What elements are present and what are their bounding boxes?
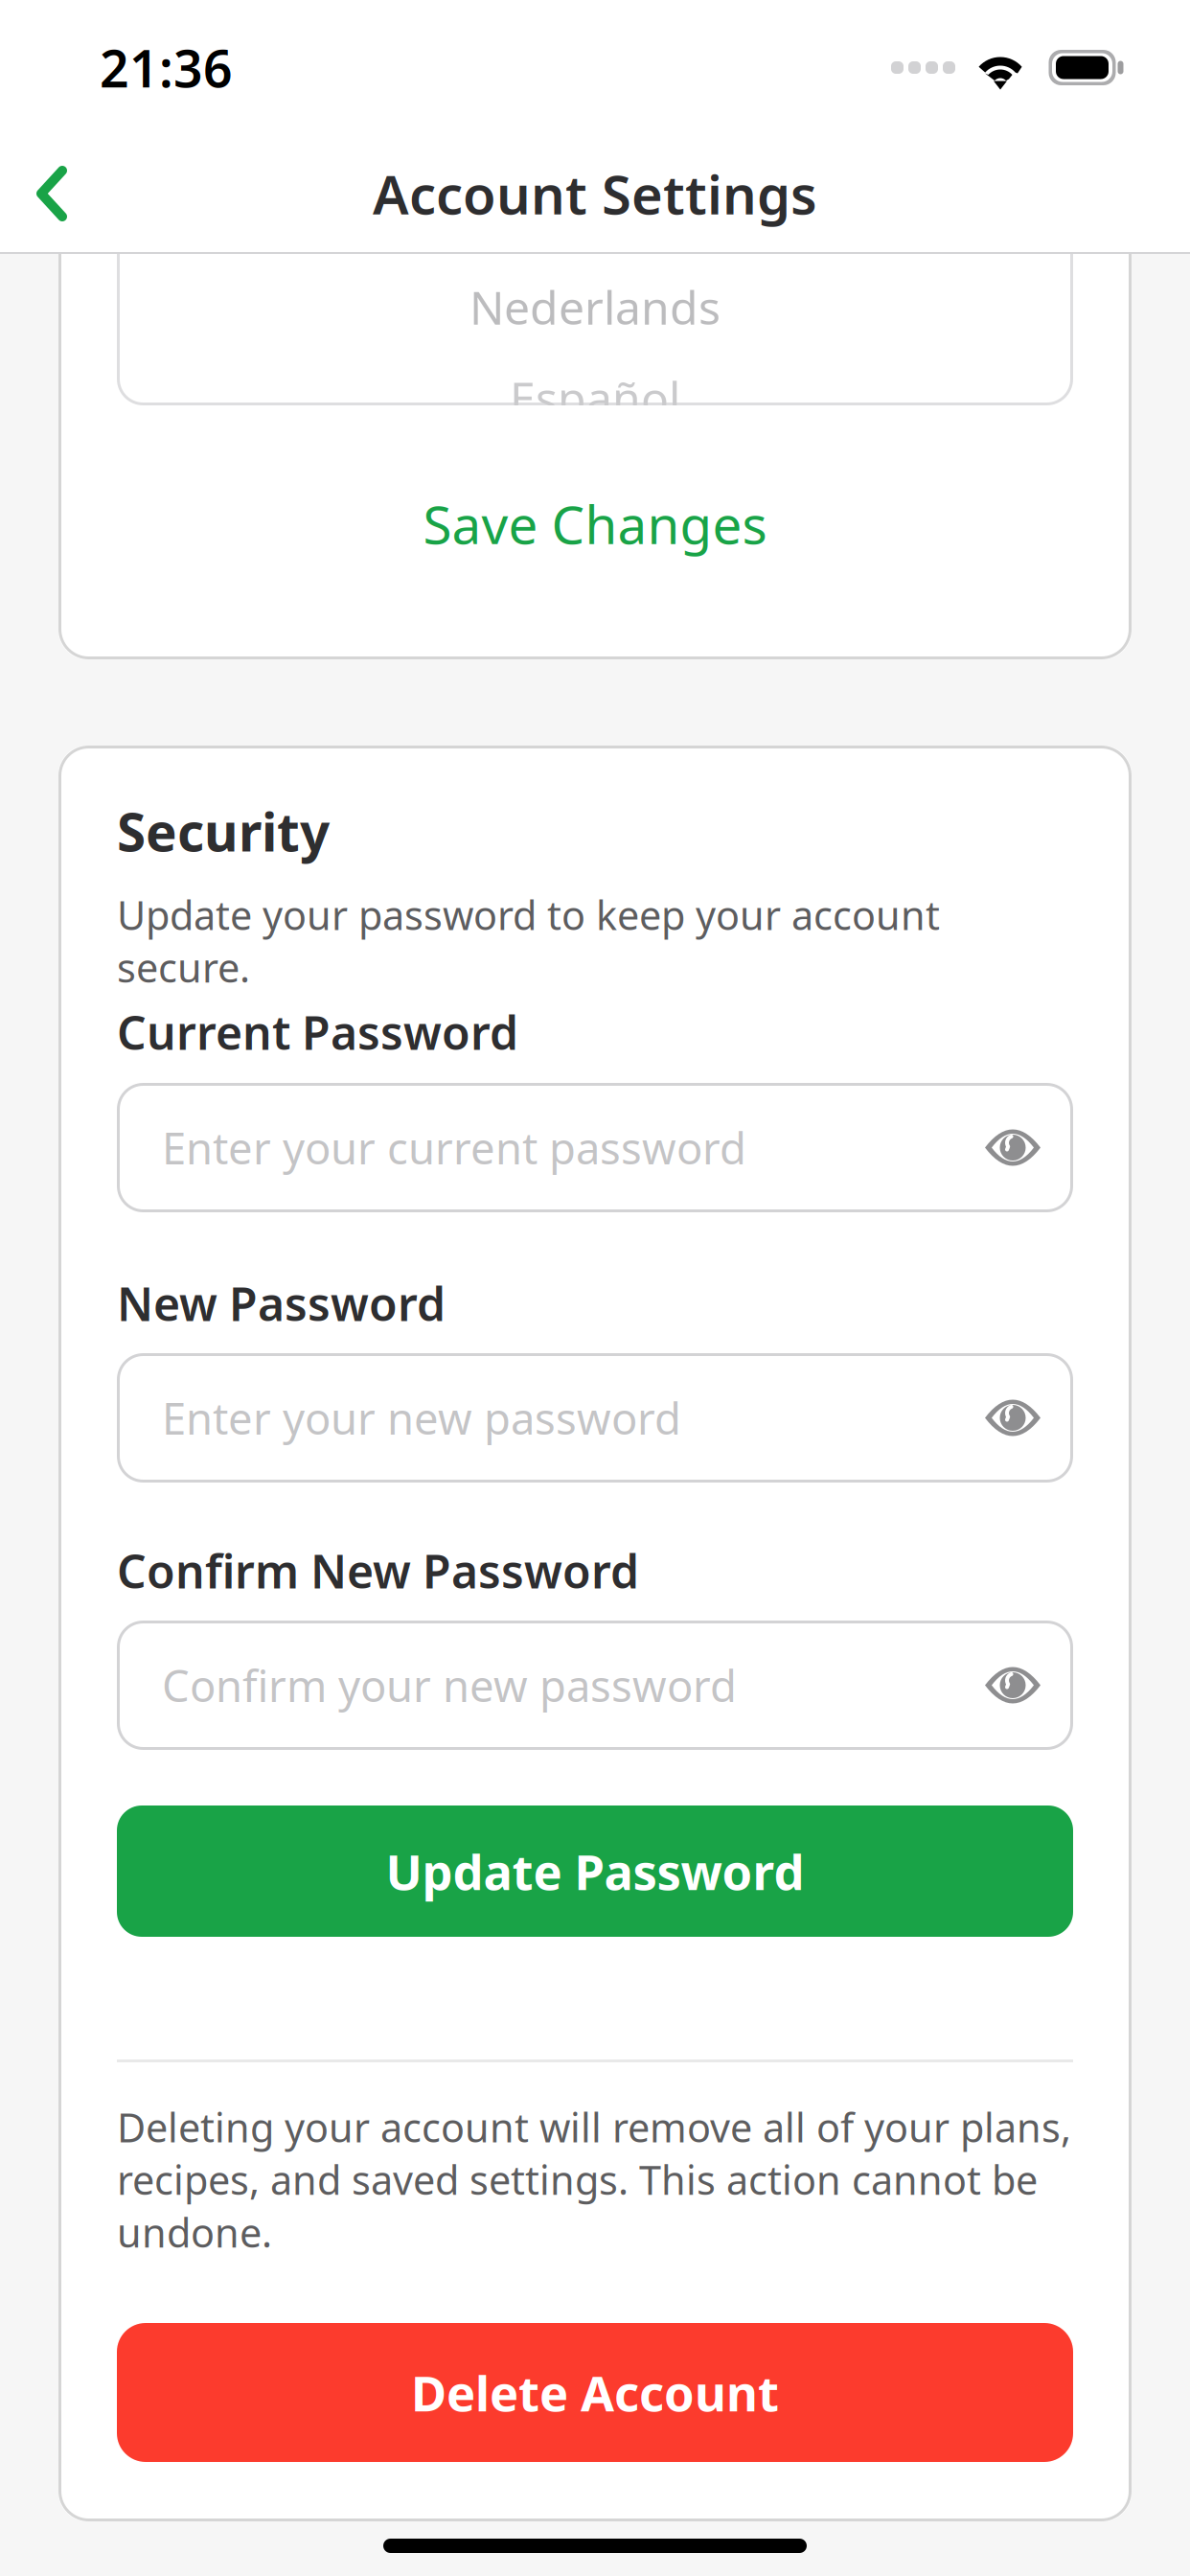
staticText: Update your password to keep your accoun… bbox=[117, 888, 940, 994]
staticText: Current Password bbox=[117, 1001, 518, 1063]
button[interactable]: Update Password bbox=[117, 1805, 1073, 1937]
button[interactable]: Show password bbox=[961, 1643, 1041, 1727]
staticText: Español bbox=[510, 367, 680, 428]
staticText: Enter your new password bbox=[162, 1389, 681, 1447]
staticText: Security bbox=[117, 796, 330, 866]
staticText: Enter your current password bbox=[162, 1119, 746, 1176]
staticText: Deleting your account will remove all of… bbox=[117, 2101, 1071, 2259]
staticText: Nederlands bbox=[469, 276, 721, 337]
staticText: Delete Account bbox=[411, 2360, 779, 2425]
button[interactable]: Save Changes bbox=[117, 463, 1073, 585]
staticText: Confirm your new password bbox=[162, 1656, 737, 1714]
button[interactable]: Delete Account bbox=[117, 2323, 1073, 2462]
staticText: Save Changes bbox=[423, 489, 767, 559]
staticText: Update Password bbox=[386, 1839, 804, 1903]
button[interactable]: Show password bbox=[961, 1376, 1041, 1460]
staticText: 21:36 bbox=[100, 34, 233, 101]
button[interactable]: Back bbox=[0, 143, 105, 244]
staticText: Account Settings bbox=[373, 158, 817, 229]
staticText: Confirm New Password bbox=[117, 1540, 639, 1601]
button[interactable]: Show password bbox=[961, 1105, 1041, 1190]
staticText: New Password bbox=[117, 1273, 446, 1334]
